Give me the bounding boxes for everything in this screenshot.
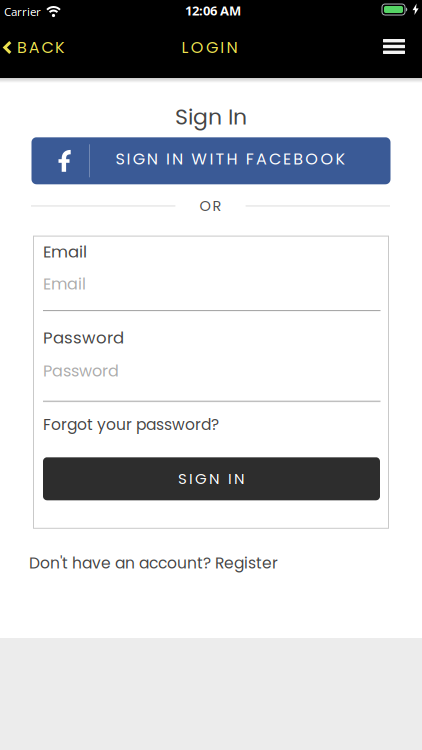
- staticText: N: [147, 148, 158, 170]
- staticText: C: [41, 36, 53, 59]
- button[interactable]: Register: [215, 552, 278, 574]
- staticText: O: [191, 36, 204, 59]
- staticText: Register: [215, 552, 278, 574]
- staticText: L: [182, 36, 189, 59]
- staticText: N: [209, 468, 220, 489]
- staticText: I: [209, 148, 213, 170]
- staticText: I: [220, 36, 224, 59]
- staticText: W: [191, 148, 207, 170]
- staticText: B: [17, 36, 27, 59]
- staticText: Sign In: [175, 101, 247, 132]
- button[interactable]: [383, 39, 422, 54]
- button[interactable]: B: [0, 36, 65, 59]
- staticText: B: [293, 148, 303, 170]
- staticText: A: [256, 148, 267, 170]
- staticText: G: [195, 468, 207, 489]
- staticText: S: [115, 148, 124, 170]
- staticText: N: [234, 468, 245, 489]
- button[interactable]: S: [31, 137, 390, 184]
- staticText: G: [206, 36, 218, 59]
- staticText: A: [29, 36, 40, 59]
- staticText: N: [226, 36, 237, 59]
- staticText: K: [335, 148, 345, 170]
- staticText: R: [213, 196, 222, 216]
- staticText: C: [269, 148, 281, 170]
- staticText: Email: [43, 240, 87, 263]
- button[interactable]: S: [43, 457, 380, 500]
- staticText: O: [199, 196, 210, 216]
- staticText: H: [227, 148, 238, 170]
- staticText: Password: [43, 360, 119, 382]
- staticText: E: [283, 148, 291, 170]
- staticText: Forgot your password?: [43, 414, 219, 435]
- staticText: F: [246, 148, 254, 170]
- staticText: Password: [43, 326, 124, 349]
- staticText: O: [320, 148, 333, 170]
- staticText: G: [133, 148, 145, 170]
- staticText: Email: [43, 273, 86, 295]
- staticText: I: [127, 148, 131, 170]
- staticText: N: [172, 148, 183, 170]
- staticText: I: [189, 468, 193, 489]
- staticText: I: [228, 468, 232, 489]
- staticText: Carrier: [4, 4, 41, 19]
- staticText: S: [178, 468, 187, 489]
- staticText: I: [166, 148, 170, 170]
- button[interactable]: Forgot your password?: [43, 414, 219, 435]
- staticText: O: [305, 148, 318, 170]
- staticText: T: [215, 148, 224, 170]
- staticText: Don't have an account?: [29, 552, 215, 574]
- staticText: K: [55, 36, 65, 59]
- staticText: 12:06 AM: [185, 2, 241, 19]
